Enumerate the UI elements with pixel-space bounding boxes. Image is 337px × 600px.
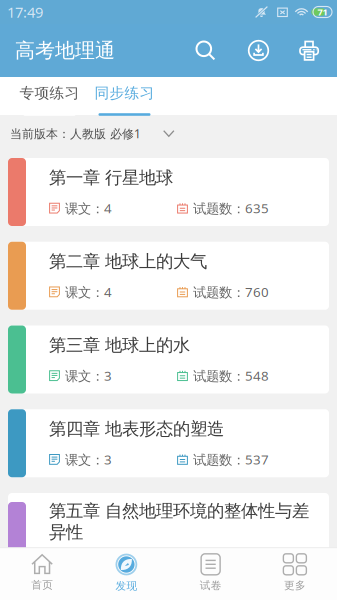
staticText: 首页 — [31, 578, 53, 591]
staticText: 第一章 行星地球 — [49, 167, 173, 188]
button[interactable]: 首页 — [0, 548, 84, 600]
staticText: 试题数：635 — [193, 199, 269, 217]
staticText: 试题数：548 — [193, 367, 269, 384]
button[interactable]: 第二章 地球上的大气 — [8, 242, 329, 310]
staticText: 课文：3 — [65, 450, 112, 468]
staticText: 第二章 地球上的大气 — [49, 251, 207, 272]
button[interactable]: 第一章 行星地球 — [8, 158, 329, 226]
staticText: 课文：4 — [65, 283, 112, 301]
button[interactable]: 同步练习 — [87, 77, 162, 115]
staticText: 71 — [317, 6, 327, 18]
staticText: 试题数：760 — [193, 283, 269, 301]
button[interactable]: 第五章 自然地理环境的整体性与差异性 — [8, 493, 329, 579]
button[interactable]: 试卷 — [168, 548, 253, 600]
staticText: 发现 — [115, 579, 137, 593]
staticText: 当前版本：人教版 必修1 — [10, 125, 141, 141]
staticText: 试卷 — [200, 579, 222, 592]
staticText: 试题数：537 — [193, 450, 269, 468]
button[interactable]: 下载 — [236, 25, 281, 75]
button[interactable]: 搜索 — [183, 25, 228, 75]
staticText: 专项练习 — [19, 84, 79, 102]
button[interactable]: 打印 — [287, 25, 332, 75]
button[interactable]: 专项练习 — [12, 77, 87, 115]
staticText: 高考地理通 — [15, 38, 115, 63]
staticText: 课文：4 — [65, 199, 112, 217]
button[interactable]: 更多 — [253, 548, 337, 600]
staticText: 试题数：420 — [193, 554, 269, 572]
staticText: 17:49 — [7, 2, 43, 22]
button[interactable]: 第四章 地表形态的塑造 — [8, 409, 329, 477]
button[interactable]: 第三章 地球上的水 — [8, 325, 329, 393]
staticText: 课文：3 — [65, 367, 112, 384]
staticText: 更多 — [284, 579, 306, 592]
button[interactable]: 发现 — [84, 548, 168, 600]
button[interactable]: 当前版本：人教版 必修1 — [0, 115, 337, 158]
staticText: 第四章 地表形态的塑造 — [49, 418, 224, 440]
staticText: 第三章 地球上的水 — [49, 334, 190, 356]
staticText: 第五章 自然地理环境的整体性与差异性 — [49, 500, 309, 543]
staticText: 同步练习 — [94, 84, 154, 102]
